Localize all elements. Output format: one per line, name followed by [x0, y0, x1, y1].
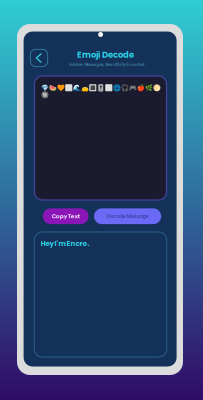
button[interactable]: Copy Text — [43, 208, 88, 224]
staticText: Decode Message — [107, 213, 149, 220]
staticText: Copy Text — [52, 212, 80, 220]
staticText: Hidden Messages, Beautifully Encoded. — [68, 61, 145, 67]
staticText: 💎🍉🧡⬜🌊👝🔳🎚⬜🌐🎧🎮🍎🌿🌕🔘 — [40, 84, 160, 99]
button[interactable]: Back — [30, 49, 48, 67]
staticText: Hey I'm Encro. — [41, 238, 90, 248]
staticText: Emoji Decode — [77, 49, 134, 61]
button[interactable]: Decode Message — [94, 208, 161, 224]
